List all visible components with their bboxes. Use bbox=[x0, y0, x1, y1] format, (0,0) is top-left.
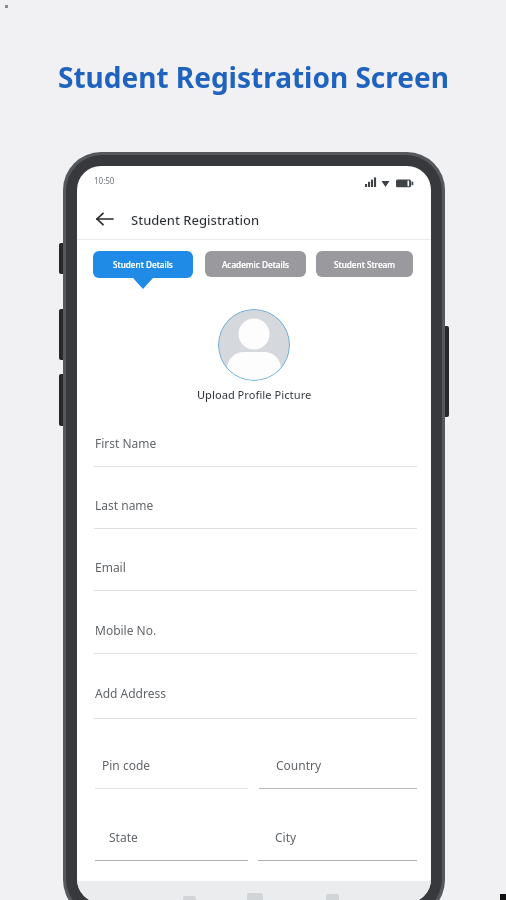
button[interactable] bbox=[89, 206, 119, 232]
staticText: Mobile No. bbox=[95, 622, 157, 638]
button[interactable] bbox=[94, 551, 417, 592]
staticText: Upload Profile Picture bbox=[197, 387, 312, 402]
button[interactable] bbox=[94, 427, 417, 468]
staticText: Pin code bbox=[102, 757, 151, 773]
staticText: Student Details bbox=[113, 259, 173, 270]
staticText: Academic Details bbox=[222, 259, 289, 270]
button[interactable] bbox=[258, 821, 417, 862]
staticText: Last name bbox=[95, 497, 154, 513]
button[interactable] bbox=[94, 489, 417, 530]
button[interactable]: Student Details bbox=[93, 251, 193, 278]
staticText: Email bbox=[95, 559, 126, 575]
staticText: State bbox=[109, 829, 138, 845]
staticText: Student Registration bbox=[131, 211, 260, 229]
button[interactable]: Student Stream bbox=[316, 251, 413, 277]
staticText: 10:50 bbox=[94, 175, 115, 186]
staticText: Student Stream bbox=[334, 259, 396, 270]
button[interactable] bbox=[259, 749, 417, 790]
staticText: Add Address bbox=[95, 685, 166, 701]
button[interactable] bbox=[94, 614, 417, 655]
staticText: Student Registration Screen bbox=[58, 58, 449, 96]
staticText: Country bbox=[276, 757, 322, 773]
button[interactable] bbox=[218, 309, 290, 381]
button[interactable] bbox=[95, 821, 248, 862]
button[interactable] bbox=[94, 677, 417, 720]
button[interactable]: Academic Details bbox=[205, 251, 306, 277]
staticText: First Name bbox=[95, 435, 157, 451]
button[interactable] bbox=[95, 749, 248, 790]
staticText: City bbox=[275, 829, 297, 845]
